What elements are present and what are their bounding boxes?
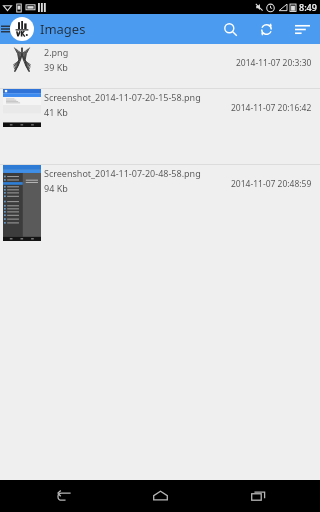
staticText: 2014-11-07 20:16:42 [231, 102, 312, 114]
staticText: 41 Kb [44, 106, 68, 118]
button[interactable]: Search [212, 14, 248, 44]
button[interactable]: Screenshot_2014-11-07-20-48-58.png [0, 165, 320, 245]
staticText: 2014-11-07 20:3:30 [236, 57, 312, 69]
button[interactable]: 2.png [0, 44, 320, 88]
staticText: Screenshot_2014-11-07-20-15-58.png [44, 91, 201, 103]
staticText: 8:49 [299, 1, 317, 13]
staticText: Images [40, 20, 86, 38]
button[interactable]: Recent apps [223, 480, 293, 512]
button[interactable]: Open navigation drawer [0, 14, 10, 44]
button[interactable] [10, 17, 34, 41]
button[interactable]: Screenshot_2014-11-07-20-15-58.png [0, 89, 320, 164]
button[interactable]: Home [125, 480, 195, 512]
button[interactable]: Sort [284, 14, 320, 44]
staticText: 2014-11-07 20:48:59 [231, 178, 312, 190]
staticText: 2.png [44, 46, 69, 58]
staticText: Screenshot_2014-11-07-20-48-58.png [44, 167, 201, 179]
staticText: 39 Kb [44, 61, 68, 73]
button[interactable]: Back [28, 480, 98, 512]
staticText: 94 Kb [44, 182, 68, 194]
button[interactable]: Refresh [248, 14, 284, 44]
